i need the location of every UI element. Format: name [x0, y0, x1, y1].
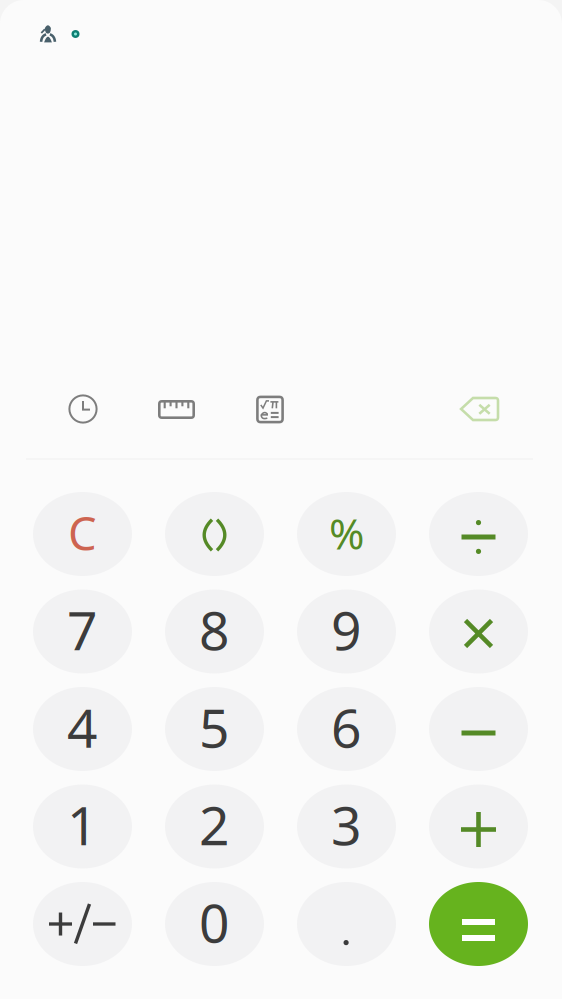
button[interactable]: Add: [429, 784, 528, 868]
staticText: 3: [331, 789, 362, 860]
button[interactable]: 1: [33, 784, 132, 868]
staticText: 6: [331, 692, 362, 762]
staticText: C: [68, 503, 97, 563]
staticText: %: [329, 505, 364, 561]
button[interactable]: Unit converter: [158, 400, 195, 419]
staticText: 4: [67, 692, 98, 762]
button[interactable]: 7: [33, 589, 132, 673]
staticText: 8: [199, 594, 230, 665]
button[interactable]: Delete: [459, 396, 499, 421]
button[interactable]: 8: [165, 589, 264, 673]
button[interactable]: Decimal point: [297, 882, 396, 966]
button[interactable]: %: [297, 492, 396, 576]
staticText: 1: [67, 789, 98, 860]
button[interactable]: Divide: [429, 492, 528, 576]
button[interactable]: Account: [39, 24, 56, 43]
button[interactable]: 6: [297, 687, 396, 771]
button[interactable]: 2: [165, 784, 264, 868]
staticText: 0: [199, 887, 230, 957]
button[interactable]: Toggle sign: [33, 882, 132, 966]
button[interactable]: 0: [165, 882, 264, 966]
button[interactable]: Parentheses: [165, 492, 264, 576]
button[interactable]: History: [68, 394, 98, 424]
staticText: 9: [331, 594, 362, 665]
button[interactable]: 5: [165, 687, 264, 771]
button[interactable]: Scientific calculator: [256, 395, 284, 423]
staticText: 2: [199, 789, 230, 860]
staticText: 7: [67, 594, 98, 665]
button[interactable]: C: [33, 492, 132, 576]
button[interactable]: Settings: [71, 30, 79, 38]
button[interactable]: 9: [297, 589, 396, 673]
button[interactable]: 4: [33, 687, 132, 771]
button[interactable]: Equals: [429, 882, 528, 966]
button[interactable]: 3: [297, 784, 396, 868]
button[interactable]: Subtract: [429, 687, 528, 771]
staticText: 5: [199, 692, 230, 762]
button[interactable]: Multiply: [429, 589, 528, 673]
